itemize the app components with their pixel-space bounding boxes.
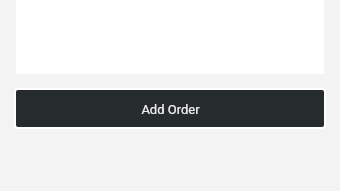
button[interactable]: Add Order: [16, 90, 324, 127]
staticText: Add Order: [141, 102, 200, 117]
